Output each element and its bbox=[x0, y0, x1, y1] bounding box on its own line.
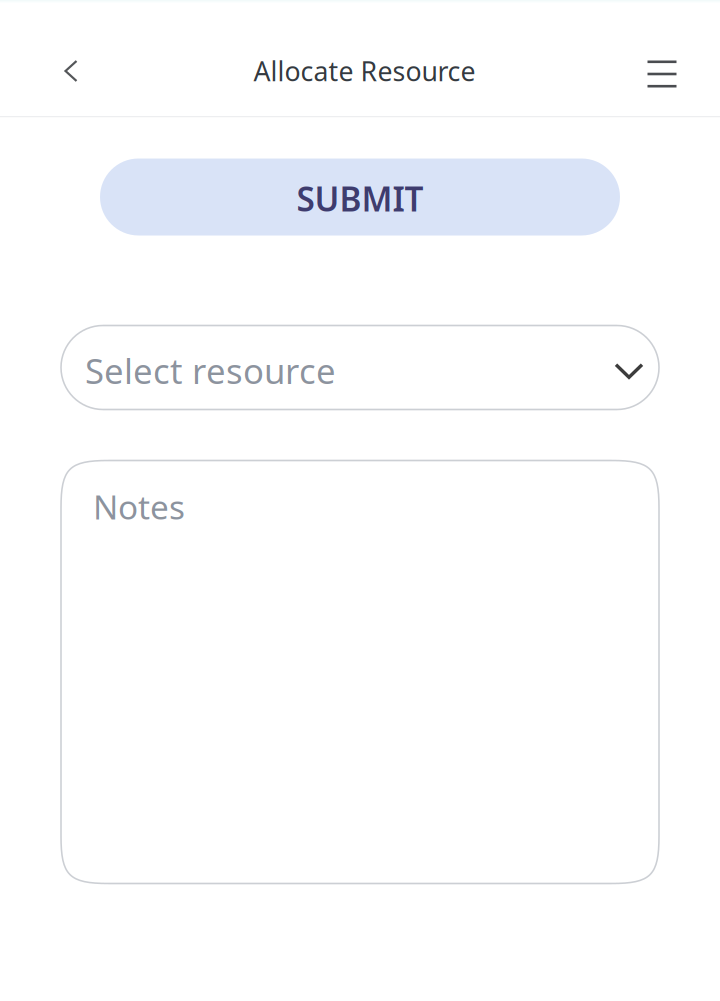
staticText: Select resource bbox=[85, 347, 336, 393]
staticText: Notes bbox=[93, 484, 185, 529]
button[interactable]: Notes bbox=[61, 460, 659, 883]
staticText: SUBMIT bbox=[296, 176, 423, 221]
button[interactable]: Back bbox=[49, 43, 93, 99]
button[interactable]: Select resource bbox=[61, 325, 659, 409]
staticText: Allocate Resource bbox=[253, 53, 475, 89]
button[interactable]: Menu bbox=[640, 43, 684, 99]
button[interactable]: SUBMIT bbox=[100, 158, 620, 235]
